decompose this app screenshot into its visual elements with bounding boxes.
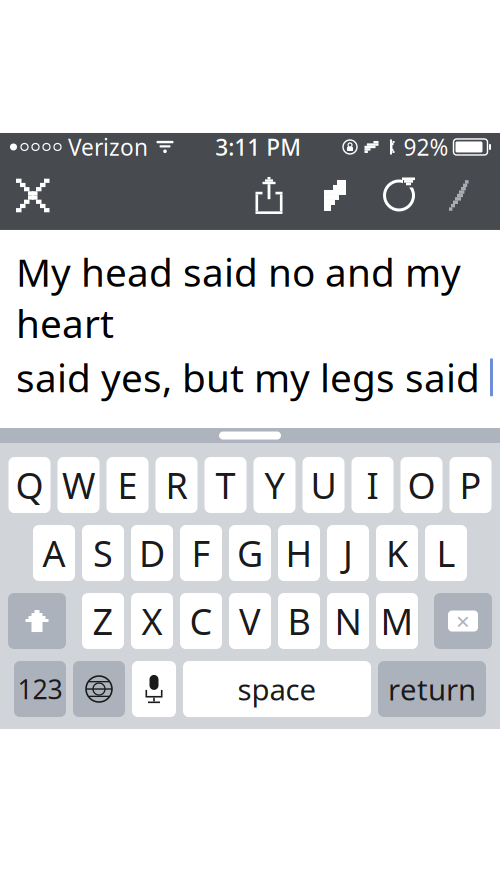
button[interactable]: Shift xyxy=(8,593,66,649)
button[interactable]: K xyxy=(376,525,418,581)
button[interactable]: X xyxy=(131,593,173,649)
button[interactable]: V xyxy=(229,593,271,649)
button[interactable]: Y xyxy=(253,457,295,513)
button[interactable]: Redo xyxy=(376,170,422,220)
staticText: said yes, but my legs said xyxy=(16,352,480,403)
staticText: Y xyxy=(264,461,284,509)
button[interactable]: Close xyxy=(10,172,56,218)
staticText: H xyxy=(285,529,312,577)
staticText: Verizon xyxy=(68,132,148,162)
staticText: A xyxy=(42,529,65,577)
button[interactable]: Quick actions xyxy=(318,172,352,218)
staticText: W xyxy=(62,461,95,509)
staticText: B xyxy=(287,597,310,645)
staticText: return xyxy=(388,669,476,708)
button[interactable]: A xyxy=(33,525,75,581)
staticText: L xyxy=(436,529,455,577)
button[interactable]: S xyxy=(82,525,124,581)
staticText: Z xyxy=(92,597,113,645)
button[interactable]: M xyxy=(376,593,418,649)
staticText: × xyxy=(456,605,470,637)
button[interactable]: R xyxy=(155,457,197,513)
staticText: X xyxy=(141,597,162,645)
staticText: D xyxy=(139,529,165,577)
button[interactable]: Q xyxy=(8,457,50,513)
button[interactable]: return xyxy=(378,661,486,717)
button[interactable]: T xyxy=(204,457,246,513)
staticText: 123 xyxy=(17,671,62,707)
button[interactable]: H xyxy=(278,525,320,581)
staticText: N xyxy=(334,597,361,645)
staticText: I xyxy=(366,461,378,509)
staticText: M xyxy=(380,597,413,645)
staticText: E xyxy=(117,461,137,509)
staticText: K xyxy=(386,529,408,577)
staticText: T xyxy=(215,461,235,509)
button[interactable]: G xyxy=(229,525,271,581)
button[interactable]: J xyxy=(327,525,369,581)
button[interactable]: W xyxy=(57,457,99,513)
staticText: O xyxy=(407,461,435,509)
button[interactable]: 123 xyxy=(14,661,66,717)
button[interactable]: P xyxy=(449,457,491,513)
button[interactable]: L xyxy=(425,525,467,581)
button[interactable]: Share xyxy=(248,170,290,220)
staticText: F xyxy=(191,529,210,577)
button[interactable]: U xyxy=(302,457,344,513)
staticText: U xyxy=(310,461,336,509)
button[interactable]: O xyxy=(400,457,442,513)
button[interactable]: D xyxy=(131,525,173,581)
button[interactable]: I xyxy=(351,457,393,513)
button[interactable]: E xyxy=(106,457,148,513)
button[interactable]: Dictation xyxy=(132,661,176,717)
staticText: My head said no and my heart xyxy=(16,246,461,349)
button[interactable]: Done xyxy=(442,171,488,219)
staticText: Q xyxy=(15,461,43,509)
button[interactable]: F xyxy=(180,525,222,581)
button[interactable]: space xyxy=(183,661,371,717)
button[interactable]: Delete xyxy=(434,593,492,649)
staticText: J xyxy=(343,529,353,577)
button[interactable]: Z xyxy=(82,593,124,649)
staticText: S xyxy=(93,529,113,577)
button[interactable]: Next keyboard xyxy=(73,661,125,717)
staticText: G xyxy=(237,529,263,577)
staticText: R xyxy=(165,461,187,509)
staticText: 3:11 PM xyxy=(215,132,301,162)
staticText: V xyxy=(239,597,261,645)
staticText: space xyxy=(237,669,316,708)
button[interactable]: B xyxy=(278,593,320,649)
button[interactable]: N xyxy=(327,593,369,649)
button[interactable]: C xyxy=(180,593,222,649)
staticText: 92% xyxy=(403,132,448,162)
staticText: P xyxy=(459,461,481,509)
staticText: C xyxy=(189,597,212,645)
